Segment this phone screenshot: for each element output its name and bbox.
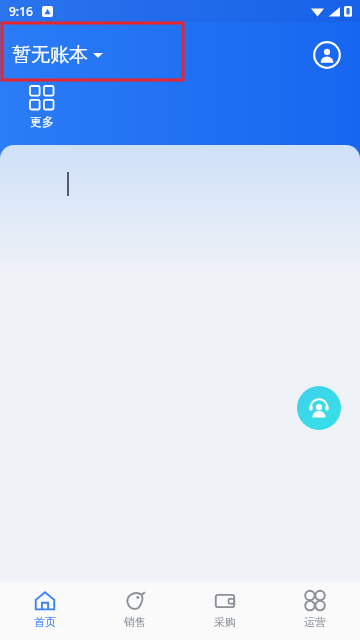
button[interactable]: 个人中心	[312, 40, 342, 70]
staticText: 首页	[34, 615, 56, 629]
staticText: 运营	[304, 615, 326, 629]
staticText: 更多	[30, 114, 54, 129]
button[interactable]: 在线客服	[297, 386, 341, 430]
staticText: 暂无账本	[12, 43, 88, 67]
button[interactable]: 采购	[180, 582, 270, 640]
button[interactable]: 首页	[0, 582, 90, 640]
staticText: 9:16	[9, 3, 33, 19]
button[interactable]: 更多	[26, 82, 58, 133]
button[interactable]: 销售	[90, 582, 180, 640]
staticText: 销售	[124, 615, 146, 629]
button[interactable]: 运营	[270, 582, 360, 640]
button[interactable]: 暂无账本	[12, 39, 103, 71]
staticText: 采购	[214, 615, 236, 629]
